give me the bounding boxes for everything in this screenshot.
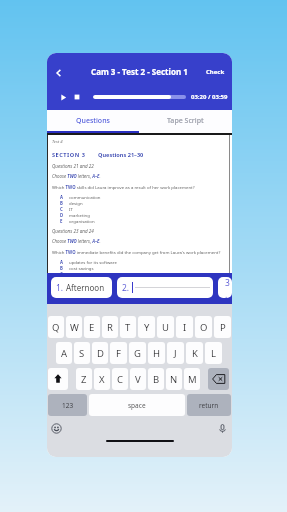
- staticText: V: [135, 373, 141, 386]
- staticText: Afternoon: [66, 282, 105, 293]
- staticText: B: [153, 373, 160, 386]
- staticText: Questions 21–30: [98, 151, 144, 159]
- staticText: P: [220, 321, 226, 334]
- staticText: C: [60, 271, 69, 273]
- staticText: Choose TWO letters, A–E.: [52, 173, 101, 179]
- button[interactable]: Stop: [73, 93, 81, 101]
- staticText: return: [199, 401, 219, 410]
- button[interactable]: M: [184, 368, 200, 390]
- staticText: Cam 3 - Test 2 - Section 1: [91, 66, 188, 77]
- staticText: T: [125, 321, 131, 334]
- button[interactable]: Tape Script: [139, 110, 232, 131]
- staticText: S: [79, 347, 85, 360]
- button[interactable]: Back: [52, 66, 66, 80]
- button[interactable]: P: [214, 316, 231, 338]
- staticText: Test 4: [52, 139, 63, 145]
- button[interactable]: Check: [199, 64, 232, 80]
- staticText: space: [128, 401, 146, 410]
- button[interactable]: O: [195, 316, 212, 338]
- staticText: Which TWO skills did Laura improve as a …: [52, 184, 195, 190]
- button[interactable]: E: [84, 316, 100, 338]
- staticText: W: [70, 321, 79, 334]
- button[interactable]: S: [74, 342, 90, 364]
- button[interactable]: 1.: [51, 277, 112, 298]
- button[interactable]: Q: [48, 316, 64, 338]
- button[interactable]: Emoji: [51, 423, 62, 434]
- staticText: M: [188, 373, 197, 386]
- staticText: L: [211, 347, 216, 360]
- button[interactable]: U: [157, 316, 174, 338]
- staticText: Questions 23 and 24: [52, 228, 94, 234]
- button[interactable]: H: [148, 342, 165, 364]
- button[interactable]: B: [148, 368, 164, 390]
- staticText: updates for its software: [69, 259, 117, 265]
- staticText: A: [60, 259, 69, 265]
- button[interactable]: R: [102, 316, 118, 338]
- staticText: E: [60, 218, 69, 224]
- button[interactable]: 123: [48, 394, 87, 416]
- button[interactable]: Play: [59, 93, 68, 102]
- button[interactable]: X: [94, 368, 110, 390]
- staticText: Z: [81, 373, 87, 386]
- staticText: I: [183, 321, 187, 334]
- staticText: 03:20 / 03:59: [191, 93, 228, 101]
- staticText: communication: [69, 194, 101, 200]
- staticText: A: [60, 194, 69, 200]
- button[interactable]: L: [205, 342, 222, 364]
- staticText: organisation: [69, 218, 95, 224]
- button[interactable]: Shift: [48, 368, 68, 390]
- staticText: Questions: [76, 116, 110, 126]
- staticText: X: [99, 373, 105, 386]
- button[interactable]: J: [167, 342, 184, 364]
- button[interactable]: return: [187, 394, 231, 416]
- button[interactable]: W: [66, 316, 82, 338]
- staticText: marketing: [69, 212, 90, 218]
- staticText: Choose TWO letters, A–E.: [52, 238, 101, 244]
- staticText: D: [97, 347, 104, 360]
- staticText: 123: [62, 401, 74, 410]
- button[interactable]: Questions: [47, 110, 139, 131]
- staticText: Tape Script: [167, 116, 204, 126]
- button[interactable]: 2.: [117, 277, 213, 298]
- button[interactable]: K: [186, 342, 203, 364]
- button[interactable]: N: [166, 368, 182, 390]
- staticText: Check: [206, 68, 225, 76]
- staticText: G: [134, 347, 141, 360]
- staticText: C: [60, 206, 69, 212]
- staticText: 1.: [56, 282, 64, 294]
- staticText: A: [61, 347, 68, 360]
- button[interactable]: Backspace: [208, 368, 229, 390]
- staticText: cost savings: [69, 265, 94, 271]
- staticText: E: [89, 321, 95, 334]
- staticText: 2.: [122, 282, 130, 294]
- staticText: Questions 21 and 22: [52, 163, 94, 169]
- button[interactable]: D: [92, 342, 108, 364]
- staticText: Q: [52, 321, 60, 334]
- button[interactable]: T: [120, 316, 136, 338]
- button[interactable]: space: [89, 394, 185, 416]
- staticText: R: [107, 321, 113, 334]
- staticText: H: [153, 347, 161, 360]
- button[interactable]: 3.: [218, 277, 232, 298]
- staticText: U: [162, 321, 169, 334]
- button[interactable]: V: [130, 368, 146, 390]
- staticText: 3.: [225, 277, 232, 298]
- staticText: IT: [69, 206, 73, 212]
- staticText: SECTION 3: [52, 151, 86, 159]
- staticText: design: [69, 200, 83, 206]
- staticText: O: [200, 321, 208, 334]
- staticText: J: [174, 347, 177, 360]
- button[interactable]: Z: [76, 368, 92, 390]
- button[interactable]: C: [112, 368, 128, 390]
- button[interactable]: F: [110, 342, 127, 364]
- button[interactable]: A: [56, 342, 72, 364]
- button[interactable]: I: [176, 316, 193, 338]
- staticText: Y: [144, 321, 150, 334]
- button[interactable]: Microphone: [217, 423, 228, 434]
- button[interactable]: G: [129, 342, 146, 364]
- staticText: K: [192, 347, 198, 360]
- button[interactable]: Y: [138, 316, 155, 338]
- staticText: B: [60, 200, 69, 206]
- staticText: D: [60, 212, 69, 218]
